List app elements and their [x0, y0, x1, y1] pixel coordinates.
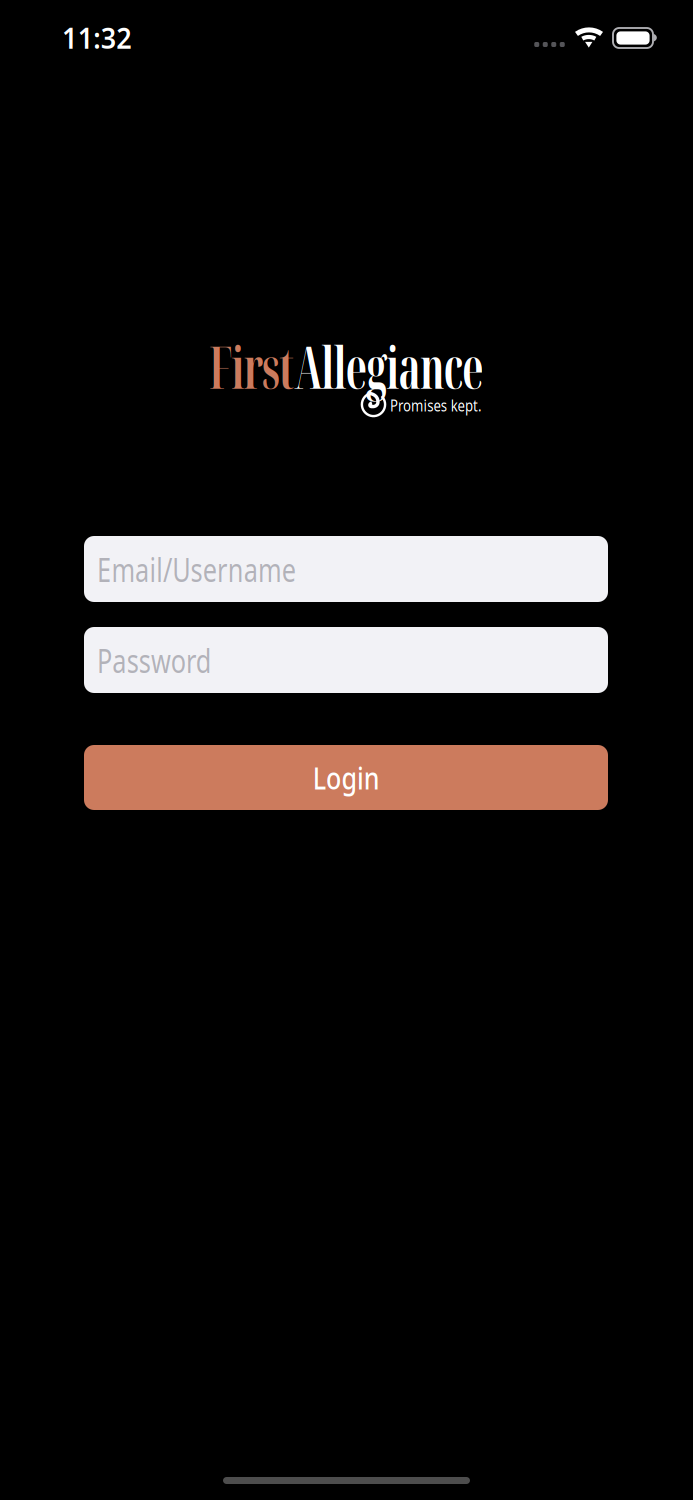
staticText: Email/Username	[97, 547, 359, 591]
staticText: Password	[97, 638, 248, 682]
staticText: First	[168, 326, 279, 406]
staticText: Login	[305, 757, 386, 798]
staticText: 11:32	[62, 18, 138, 57]
button[interactable]: Login	[84, 745, 608, 810]
staticText: Promises kept.	[390, 395, 538, 423]
staticText: Allegiance	[279, 326, 525, 406]
